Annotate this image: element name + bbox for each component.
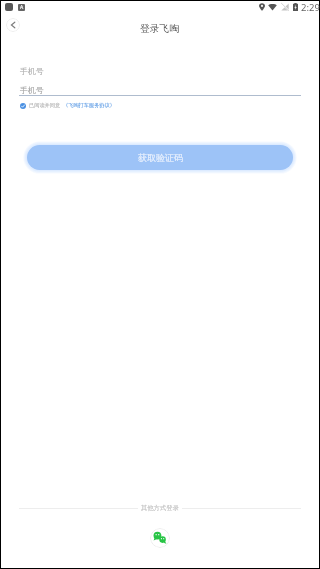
- staticText: 2:29: [301, 1, 320, 12]
- staticText: 已阅读并同意: [29, 102, 61, 109]
- staticText: 登录飞啕: [140, 23, 180, 35]
- staticText: 手机号: [20, 66, 44, 76]
- staticText: 《飞啕打车服务协议》: [63, 102, 115, 109]
- button[interactable]: 获取验证码: [27, 145, 293, 170]
- staticText: 获取验证码: [138, 152, 183, 163]
- button[interactable]: 已阅读并同意: [20, 102, 115, 109]
- button[interactable]: WeChat login: [150, 528, 170, 548]
- staticText: 手机号: [20, 85, 44, 95]
- button[interactable]: Back: [6, 18, 20, 32]
- staticText: A: [20, 4, 24, 11]
- staticText: 其他方式登录: [141, 504, 179, 512]
